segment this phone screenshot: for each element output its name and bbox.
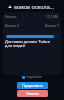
staticText: Отмена <box>26 91 39 96</box>
staticText: 12,3 МБ <box>46 15 59 19</box>
staticText: Продолжить <box>22 83 43 88</box>
staticText: Версия 4 <box>5 24 19 28</box>
staticText: подробнее <box>26 75 42 79</box>
button[interactable]: подробнее <box>22 75 42 79</box>
staticText: маков осеола… <box>14 3 54 10</box>
staticText: Версия 5 <box>45 24 59 28</box>
button[interactable]: Отмена <box>17 90 48 97</box>
staticText: Размер <box>5 15 17 19</box>
staticText: Доставки делают Тойлв для людей <box>5 39 50 48</box>
button[interactable]: Продолжить <box>17 82 48 89</box>
